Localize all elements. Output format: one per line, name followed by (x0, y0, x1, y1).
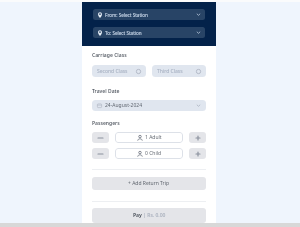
staticText: Pay (133, 212, 142, 219)
button[interactable]: Decrease (92, 132, 109, 143)
button[interactable]: 1 Adult (115, 132, 183, 143)
button[interactable]: Second Class (92, 65, 146, 77)
staticText: To: Select Station (105, 30, 142, 36)
staticText: 1 Adult (145, 134, 162, 141)
staticText: + Add Return Trip (128, 180, 170, 187)
staticText: 0 Child (145, 150, 162, 157)
staticText: | Rs. 0.00 (142, 212, 166, 219)
button[interactable]: Pay (92, 208, 206, 223)
button[interactable]: Increase (189, 132, 206, 143)
staticText: 24-August-2024 (105, 102, 143, 109)
staticText: Third Class (157, 68, 183, 75)
button[interactable]: Decrease (92, 148, 109, 159)
button[interactable]: Increase (189, 148, 206, 159)
staticText: From: Select Station (105, 12, 148, 18)
button[interactable]: 0 Child (115, 148, 183, 159)
button[interactable]: 24-August-2024 (92, 100, 206, 111)
button[interactable]: + Add Return Trip (92, 177, 206, 190)
staticText: Carriage Class (92, 52, 127, 59)
button[interactable]: To: Select Station (93, 27, 205, 38)
staticText: Second Class (97, 68, 128, 75)
button[interactable]: Third Class (152, 65, 206, 77)
staticText: Travel Date (92, 88, 120, 95)
staticText: Passengers (92, 120, 120, 127)
button[interactable]: From: Select Station (93, 9, 205, 20)
